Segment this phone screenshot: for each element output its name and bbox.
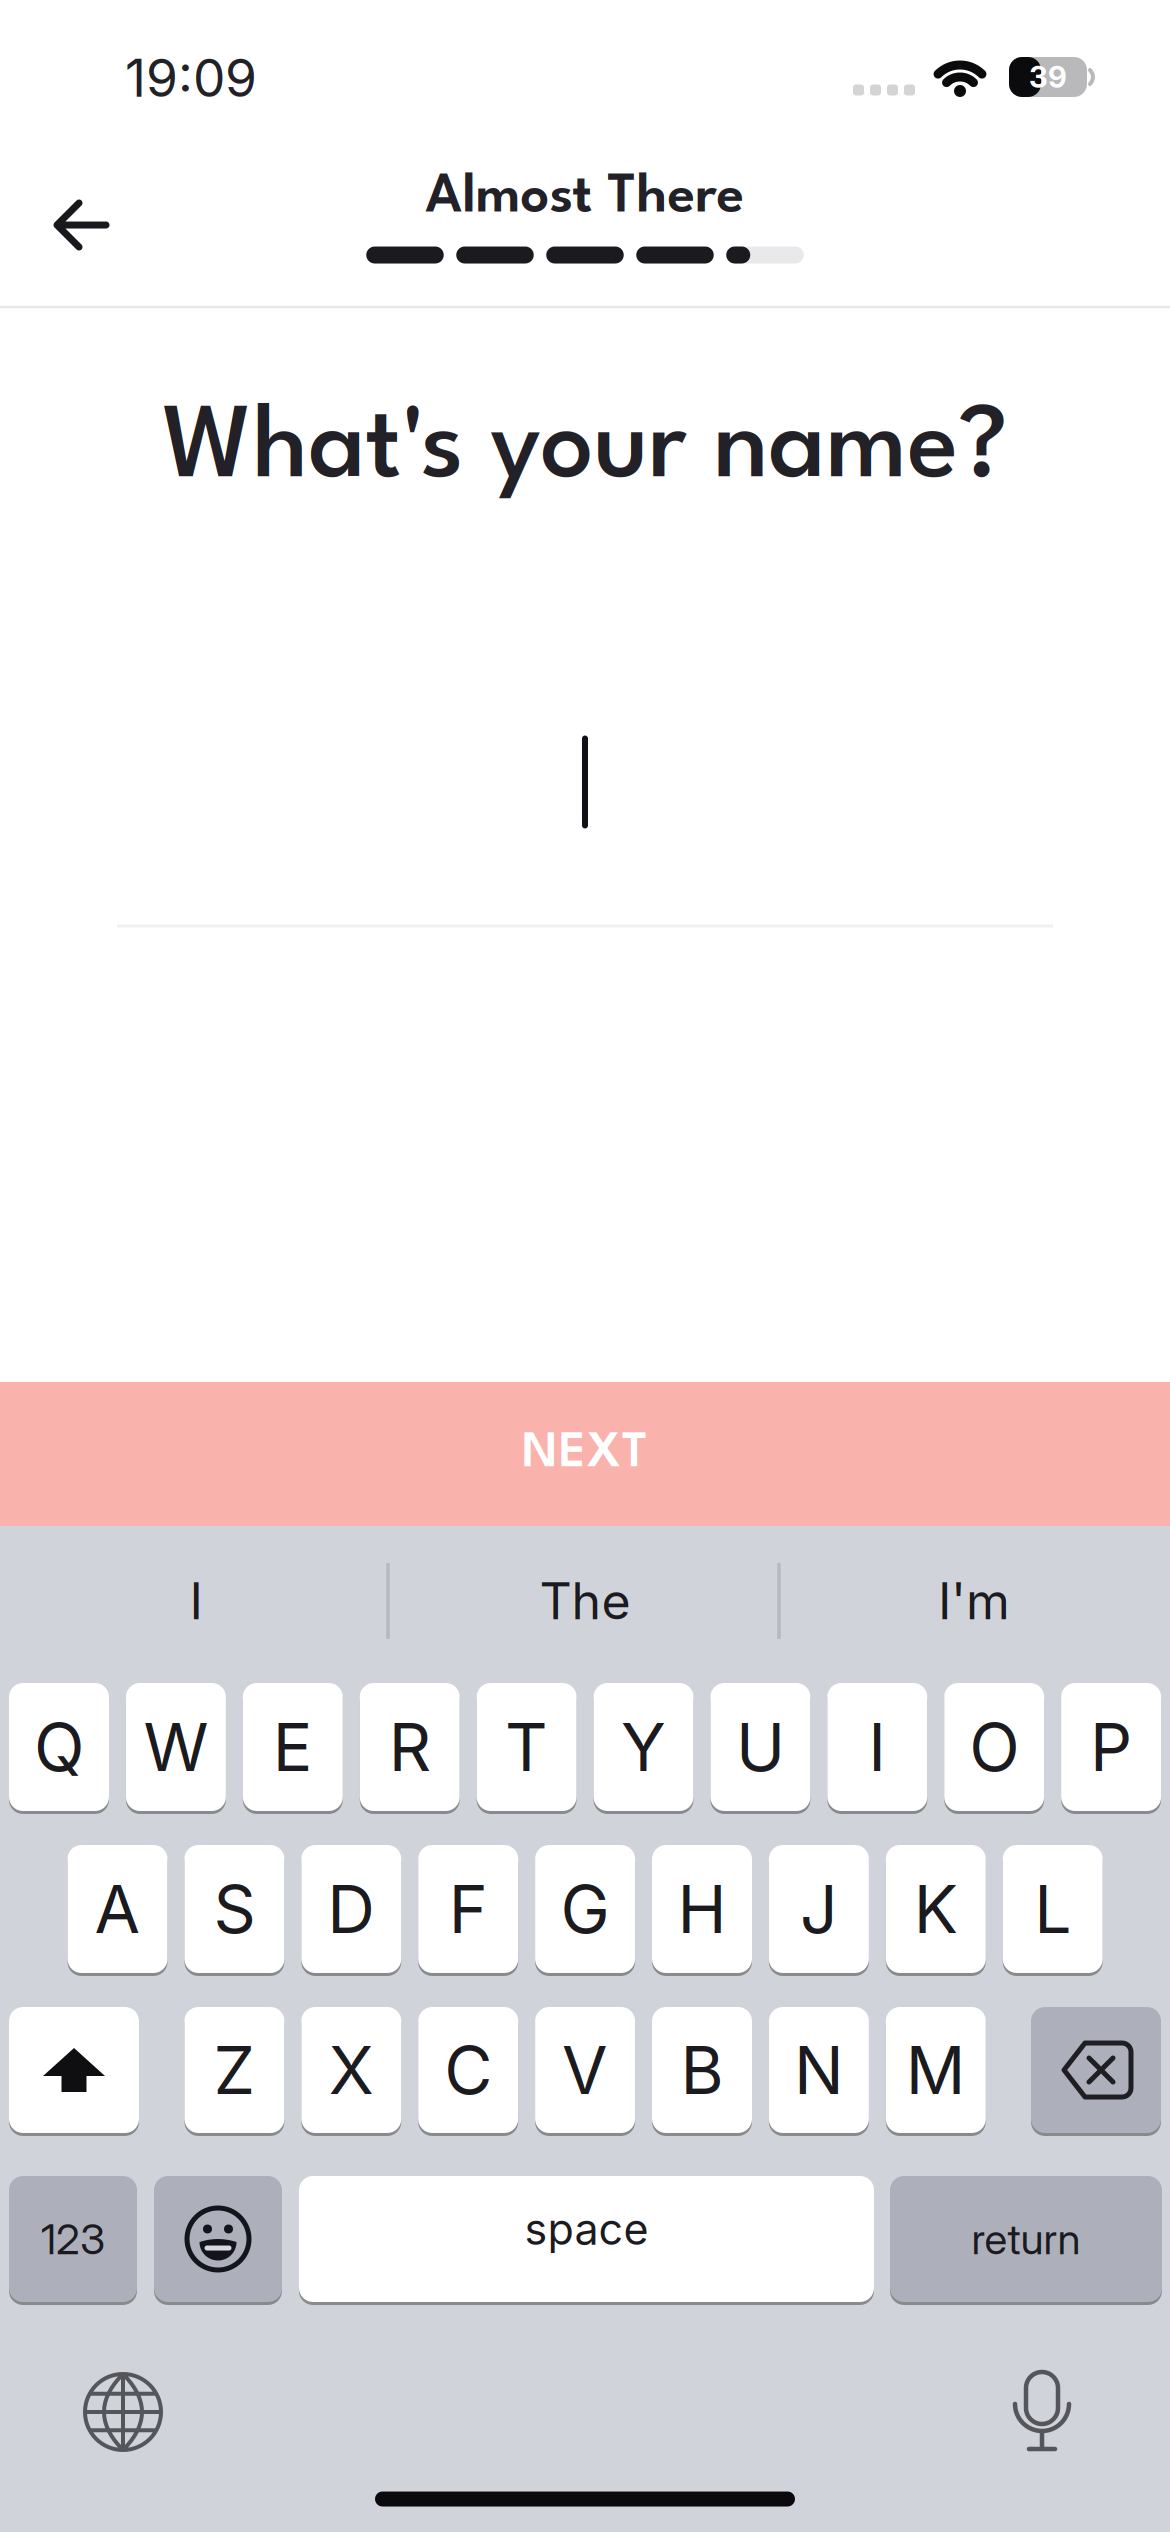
button[interactable]: I: [6, 1551, 386, 1651]
button[interactable]: Emoji: [154, 2176, 282, 2302]
staticText: The: [539, 1571, 630, 1631]
button[interactable]: I: [827, 1683, 927, 1811]
button[interactable]: NEXT: [0, 1382, 1170, 1526]
button[interactable]: W: [126, 1683, 226, 1811]
button[interactable]: space: [299, 2176, 874, 2302]
button[interactable]: Shift: [9, 2007, 139, 2133]
button[interactable]: S: [184, 1845, 284, 1973]
staticText: I'm: [938, 1571, 1010, 1631]
staticText: Almost There: [425, 172, 744, 224]
button[interactable]: return: [890, 2176, 1162, 2302]
staticText: G: [561, 1869, 610, 1949]
button[interactable]: G: [535, 1845, 635, 1973]
staticText: O: [969, 1707, 1019, 1787]
staticText: N: [794, 2030, 844, 2110]
button[interactable]: J: [769, 1845, 869, 1973]
button[interactable]: F: [418, 1845, 518, 1973]
button[interactable]: H: [652, 1845, 752, 1973]
staticText: I: [189, 1571, 202, 1631]
button[interactable]: T: [477, 1683, 577, 1811]
staticText: S: [213, 1869, 255, 1949]
button[interactable]: Next keyboard: [78, 2367, 168, 2457]
staticText: 39: [1029, 59, 1067, 95]
button[interactable]: 123: [9, 2176, 137, 2302]
button[interactable]: The: [395, 1551, 775, 1651]
staticText: W: [143, 1707, 208, 1787]
button[interactable]: V: [535, 2007, 635, 2133]
staticText: C: [444, 2030, 492, 2110]
button[interactable]: Q: [9, 1683, 109, 1811]
button[interactable]: O: [944, 1683, 1044, 1811]
button[interactable]: P: [1061, 1683, 1161, 1811]
button[interactable]: Delete: [1031, 2007, 1161, 2133]
staticText: space: [524, 2203, 648, 2255]
button[interactable]: D: [301, 1845, 401, 1973]
staticText: X: [329, 2030, 374, 2110]
staticText: U: [736, 1707, 785, 1787]
staticText: Q: [34, 1707, 84, 1787]
button[interactable]: Z: [184, 2007, 284, 2133]
staticText: I: [868, 1707, 886, 1787]
staticText: E: [273, 1707, 313, 1787]
staticText: F: [449, 1869, 488, 1949]
button[interactable]: I'm: [784, 1551, 1164, 1651]
staticText: return: [971, 2214, 1080, 2264]
staticText: L: [1034, 1869, 1071, 1949]
staticText: B: [680, 2030, 723, 2110]
staticText: K: [914, 1869, 958, 1949]
button[interactable]: Back: [31, 180, 131, 270]
button[interactable]: B: [652, 2007, 752, 2133]
button[interactable]: X: [301, 2007, 401, 2133]
staticText: 123: [41, 2214, 105, 2264]
staticText: R: [389, 1707, 431, 1787]
staticText: J: [800, 1869, 838, 1949]
staticText: Z: [213, 2030, 255, 2110]
staticText: NEXT: [522, 1431, 648, 1477]
button[interactable]: M: [886, 2007, 986, 2133]
button[interactable]: K: [886, 1845, 986, 1973]
button[interactable]: C: [418, 2007, 518, 2133]
staticText: V: [562, 2030, 608, 2110]
button[interactable]: Y: [593, 1683, 693, 1811]
staticText: T: [505, 1707, 548, 1787]
button[interactable]: L: [1003, 1845, 1103, 1973]
staticText: A: [94, 1869, 140, 1949]
button[interactable]: A: [67, 1845, 167, 1973]
staticText: 19:09: [125, 47, 257, 109]
staticText: H: [677, 1869, 726, 1949]
button[interactable]: Dictation: [997, 2362, 1087, 2452]
button[interactable]: N: [769, 2007, 869, 2133]
staticText: What's your name?: [162, 402, 1007, 499]
button[interactable]: U: [710, 1683, 810, 1811]
staticText: M: [906, 2030, 966, 2110]
button[interactable]: E: [243, 1683, 343, 1811]
button[interactable]: R: [360, 1683, 460, 1811]
staticText: D: [327, 1869, 375, 1949]
staticText: Y: [621, 1707, 666, 1787]
staticText: P: [1090, 1707, 1132, 1787]
